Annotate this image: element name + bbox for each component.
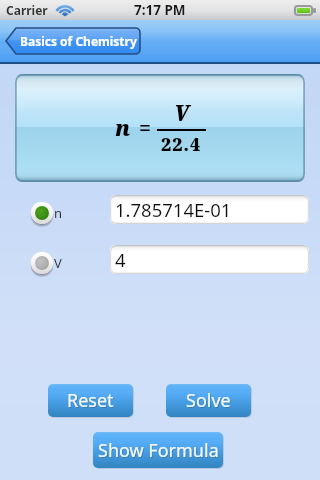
staticText: Show Formula [98,438,219,463]
staticText: 7:17 PM [134,1,186,19]
staticText: n [54,204,63,222]
staticText: Show Formula [99,439,220,464]
button[interactable]: V [30,251,62,275]
staticText: Basics of Chemistry [20,33,137,49]
staticText: 22.4 [161,132,202,157]
staticText: V [174,99,190,128]
staticText: 4 [115,247,126,272]
button[interactable]: Show Formula [93,432,223,468]
button[interactable]: n [15,74,305,182]
button[interactable]: n [30,201,63,225]
staticText: V [54,254,62,272]
staticText: Solve [186,388,231,413]
staticText: n [115,114,131,143]
staticText: = [139,114,151,143]
button[interactable]: Solve [166,384,251,417]
button[interactable]: 1.785714E-01 [110,195,309,224]
staticText: Carrier [6,2,48,18]
staticText: Reset [68,389,115,414]
button[interactable]: Basics of Chemistry [5,27,141,55]
staticText: Reset [67,388,114,413]
button[interactable]: 4 [110,245,309,274]
staticText: Solve [187,389,232,414]
staticText: 1.785714E-01 [115,197,232,222]
button[interactable]: Reset [48,384,133,417]
